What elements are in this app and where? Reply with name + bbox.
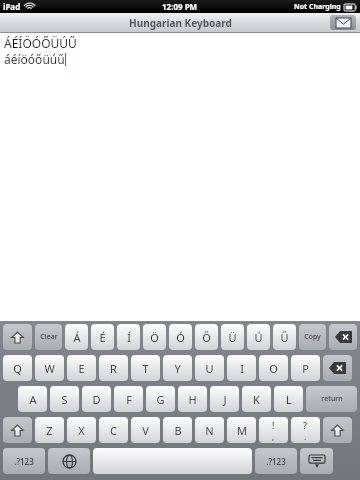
button[interactable]: L	[274, 386, 303, 412]
staticText: T	[142, 361, 149, 376]
staticText: Ő	[202, 330, 211, 345]
button[interactable]: Ó	[169, 324, 192, 350]
staticText: J	[223, 392, 227, 407]
staticText: Hungarian Keyboard	[129, 16, 232, 30]
staticText: Ö	[150, 330, 159, 345]
button[interactable]: Backspace	[323, 355, 352, 381]
staticText: W	[44, 361, 55, 376]
staticText: Copy	[304, 332, 321, 342]
staticText: V	[142, 423, 149, 438]
staticText: S	[61, 392, 68, 407]
staticText: L	[286, 392, 292, 407]
staticText: !	[272, 419, 275, 431]
staticText: É	[99, 330, 106, 345]
button[interactable]: A	[18, 386, 47, 412]
button[interactable]: Space	[93, 448, 252, 474]
button[interactable]: G	[146, 386, 175, 412]
button[interactable]: B	[163, 417, 192, 443]
staticText: H	[188, 392, 197, 407]
staticText: áéíöóőüúű	[4, 51, 65, 67]
staticText: P	[302, 361, 309, 376]
button[interactable]: U	[195, 355, 224, 381]
staticText: U	[205, 361, 214, 376]
staticText: Q	[13, 361, 22, 376]
staticText: ÁÉÍÖÓŐÜÚŰ	[4, 35, 77, 51]
button[interactable]: Hide keyboard	[300, 448, 333, 474]
button[interactable]: .?123	[3, 448, 45, 474]
button[interactable]: P	[291, 355, 320, 381]
button[interactable]: Shift	[3, 324, 32, 350]
button[interactable]: I	[227, 355, 256, 381]
staticText: Not Charging	[294, 2, 341, 12]
button[interactable]: Á	[65, 324, 88, 350]
button[interactable]: Ő	[195, 324, 218, 350]
staticText: .	[304, 431, 307, 442]
button[interactable]: ?	[291, 417, 320, 443]
button[interactable]: E	[67, 355, 96, 381]
button[interactable]: .?123	[255, 448, 297, 474]
staticText: A	[29, 392, 37, 407]
staticText: F	[126, 392, 132, 407]
staticText: Y	[174, 361, 181, 376]
staticText: E	[78, 361, 85, 376]
button[interactable]: K	[242, 386, 271, 412]
staticText: Ó	[176, 330, 185, 345]
staticText: R	[110, 361, 117, 376]
staticText: ?	[303, 419, 308, 431]
button[interactable]: Ö	[143, 324, 166, 350]
button[interactable]: !	[259, 417, 288, 443]
staticText: Clear	[40, 332, 58, 342]
staticText: Ű	[280, 330, 289, 345]
button[interactable]: Next keyboard	[48, 448, 90, 474]
staticText: D	[92, 392, 101, 407]
button[interactable]: Shift	[3, 417, 32, 443]
staticText: M	[237, 423, 247, 438]
staticText: return	[321, 394, 343, 404]
button[interactable]: S	[50, 386, 79, 412]
staticText: Z	[46, 423, 53, 438]
staticText: Á	[73, 330, 81, 345]
button[interactable]: Copy	[299, 324, 326, 350]
staticText: iPad	[3, 1, 21, 12]
button[interactable]: T	[131, 355, 160, 381]
button[interactable]: Y	[163, 355, 192, 381]
button[interactable]: M	[227, 417, 256, 443]
staticText: Ü	[228, 330, 237, 345]
staticText: Ú	[254, 330, 263, 345]
button[interactable]: F	[114, 386, 143, 412]
button[interactable]: J	[210, 386, 239, 412]
button[interactable]: Mail	[330, 15, 356, 30]
button[interactable]: Ü	[221, 324, 244, 350]
button[interactable]: D	[82, 386, 111, 412]
button[interactable]: Í	[117, 324, 140, 350]
staticText: B	[174, 423, 182, 438]
staticText: G	[156, 392, 165, 407]
button[interactable]: V	[131, 417, 160, 443]
button[interactable]: C	[99, 417, 128, 443]
staticText: K	[253, 392, 260, 407]
button[interactable]: N	[195, 417, 224, 443]
button[interactable]: O	[259, 355, 288, 381]
button[interactable]: H	[178, 386, 207, 412]
staticText: .?123	[266, 456, 286, 467]
staticText: C	[110, 423, 117, 438]
button[interactable]: É	[91, 324, 114, 350]
staticText: O	[269, 361, 278, 376]
button[interactable]: Shift	[323, 417, 352, 443]
button[interactable]: R	[99, 355, 128, 381]
staticText: 12:09 PM	[162, 1, 198, 12]
button[interactable]: Ú	[247, 324, 270, 350]
staticText: N	[205, 423, 214, 438]
staticText: .?123	[14, 456, 34, 467]
button[interactable]: return	[306, 386, 357, 412]
button[interactable]: X	[67, 417, 96, 443]
button[interactable]: Ű	[273, 324, 296, 350]
button[interactable]: W	[35, 355, 64, 381]
button[interactable]: Backspace	[329, 324, 357, 350]
button[interactable]: Z	[35, 417, 64, 443]
staticText: Í	[127, 330, 131, 345]
button[interactable]: Clear	[35, 324, 62, 350]
staticText: I	[240, 361, 244, 376]
button[interactable]: Q	[3, 355, 32, 381]
staticText: X	[78, 423, 85, 438]
